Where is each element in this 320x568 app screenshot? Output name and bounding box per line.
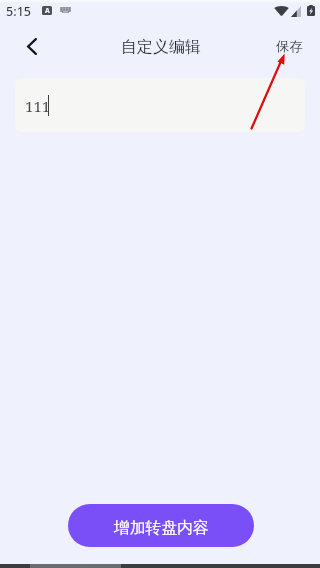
staticText: 111 [25,96,51,116]
staticText: A [45,6,50,15]
button[interactable]: 保存 [276,26,304,66]
button[interactable]: 增加转盘内容 [68,504,254,547]
staticText: 5:15 [6,3,32,20]
button[interactable]: Back [12,26,52,66]
staticText: 自定义编辑 [121,37,201,57]
staticText: 增加转盘内容 [114,518,209,538]
staticText: 保存 [276,38,304,55]
button[interactable]: 111 [15,78,305,132]
